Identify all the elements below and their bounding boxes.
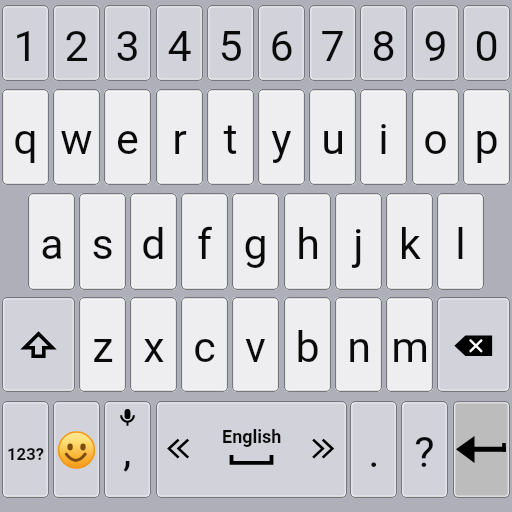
button[interactable]: m xyxy=(386,297,433,392)
button[interactable]: x xyxy=(130,297,177,392)
button[interactable]: u xyxy=(309,89,356,185)
staticText: . xyxy=(368,427,380,477)
button[interactable]: Space xyxy=(156,401,347,498)
staticText: s xyxy=(91,219,114,269)
staticText: f xyxy=(197,219,212,269)
staticText: English xyxy=(222,426,282,447)
staticText: j xyxy=(353,219,364,269)
staticText: 7 xyxy=(320,21,345,71)
button[interactable]: z xyxy=(79,297,126,392)
staticText: x xyxy=(143,322,165,372)
staticText: 8 xyxy=(371,21,396,71)
staticText: e xyxy=(116,114,139,164)
button[interactable]: e xyxy=(104,89,151,185)
staticText: m xyxy=(391,322,429,372)
button[interactable]: p xyxy=(463,89,510,185)
button[interactable]: 7 xyxy=(309,5,356,81)
button[interactable]: 3 xyxy=(104,5,151,81)
staticText: v xyxy=(245,322,266,372)
button[interactable]: 9 xyxy=(412,5,459,81)
button[interactable]: w xyxy=(53,89,100,185)
button[interactable]: ? xyxy=(401,401,448,498)
button[interactable]: o xyxy=(412,89,459,185)
button[interactable]: 8 xyxy=(360,5,407,81)
button[interactable]: 4 xyxy=(156,5,203,81)
staticText: 0 xyxy=(474,21,499,71)
staticText: w xyxy=(60,114,93,164)
staticText: h xyxy=(296,219,320,269)
staticText: g xyxy=(243,219,268,269)
button[interactable]: Shift xyxy=(2,297,75,392)
button[interactable]: l xyxy=(437,193,484,290)
staticText: a xyxy=(40,219,64,269)
button[interactable]: v xyxy=(232,297,279,392)
staticText: 5 xyxy=(218,21,243,71)
staticText: 2 xyxy=(64,21,89,71)
button[interactable]: s xyxy=(79,193,126,290)
button[interactable]: . xyxy=(350,401,397,498)
button[interactable]: 6 xyxy=(258,5,305,81)
button[interactable]: t xyxy=(207,89,254,185)
button[interactable]: r xyxy=(156,89,203,185)
button[interactable]: 1 xyxy=(2,5,49,81)
staticText: n xyxy=(347,322,371,372)
button[interactable]: 0 xyxy=(463,5,510,81)
staticText: , xyxy=(123,426,132,476)
button[interactable]: d xyxy=(130,193,177,290)
button[interactable]: Backspace xyxy=(437,297,510,392)
button[interactable]: n xyxy=(335,297,382,392)
staticText: ? xyxy=(414,427,435,477)
staticText: k xyxy=(399,219,421,269)
staticText: b xyxy=(295,322,320,372)
button[interactable]: a xyxy=(28,193,75,290)
button[interactable]: Voice input xyxy=(104,401,151,498)
staticText: 9 xyxy=(423,21,448,71)
staticText: c xyxy=(193,322,216,372)
button[interactable]: j xyxy=(335,193,382,290)
button[interactable]: 2 xyxy=(53,5,100,81)
staticText: 3 xyxy=(115,21,140,71)
button[interactable]: i xyxy=(360,89,407,185)
button[interactable]: k xyxy=(386,193,433,290)
staticText: 1 xyxy=(13,21,38,71)
staticText: q xyxy=(13,114,38,164)
button[interactable]: f xyxy=(181,193,228,290)
staticText: 4 xyxy=(167,21,192,71)
button[interactable]: b xyxy=(284,297,331,392)
staticText: z xyxy=(92,322,114,372)
staticText: u xyxy=(321,114,345,164)
button[interactable]: Enter xyxy=(453,401,510,498)
button[interactable]: c xyxy=(181,297,228,392)
button[interactable]: q xyxy=(2,89,49,185)
button[interactable]: 123? xyxy=(2,401,49,498)
staticText: y xyxy=(271,114,292,164)
staticText: t xyxy=(223,114,238,164)
staticText: i xyxy=(378,114,389,164)
button[interactable]: h xyxy=(284,193,331,290)
staticText: d xyxy=(141,219,166,269)
button[interactable]: Emoji xyxy=(53,401,100,498)
button[interactable]: 5 xyxy=(207,5,254,81)
staticText: l xyxy=(455,219,466,269)
staticText: 6 xyxy=(269,21,294,71)
button[interactable]: g xyxy=(232,193,279,290)
staticText: r xyxy=(172,114,187,164)
button[interactable]: y xyxy=(258,89,305,185)
staticText: p xyxy=(474,114,499,164)
staticText: 123? xyxy=(7,445,44,464)
staticText: o xyxy=(423,114,448,164)
